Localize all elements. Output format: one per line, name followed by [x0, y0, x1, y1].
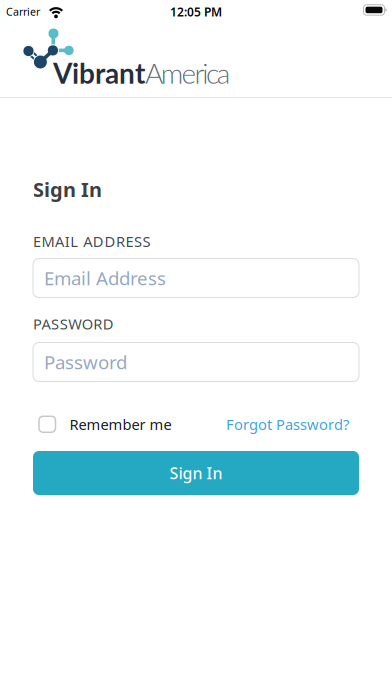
button[interactable]: Forgot Password? — [226, 414, 349, 434]
button[interactable]: Sign In — [33, 451, 359, 495]
staticText: Remember me — [69, 414, 171, 434]
button[interactable]: Password — [33, 342, 359, 381]
staticText: Password — [44, 350, 127, 374]
staticText: Vibrant — [53, 56, 145, 90]
staticText: PASSWORD — [33, 314, 114, 333]
staticText: Email Address — [44, 266, 166, 290]
button[interactable]: Remember me — [39, 414, 171, 434]
staticText: Carrier — [6, 4, 40, 19]
staticText: America — [145, 56, 231, 90]
staticText: Sign In — [169, 462, 222, 484]
staticText: Sign In — [33, 176, 102, 203]
staticText: 12:05 PM — [170, 4, 222, 20]
staticText: EMAIL ADDRESS — [33, 232, 151, 251]
button[interactable]: Email Address — [33, 258, 359, 297]
staticText: Forgot Password? — [226, 414, 349, 434]
